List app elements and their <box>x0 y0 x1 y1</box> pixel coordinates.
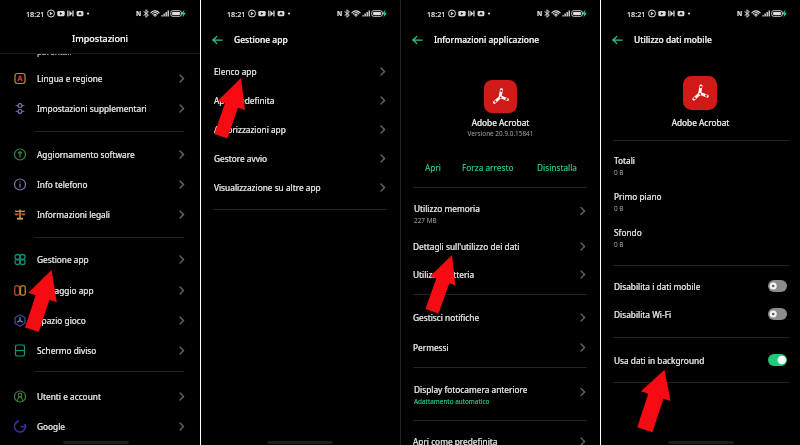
staticText: Lingua e regione <box>37 73 103 84</box>
button[interactable]: Lingua e regione <box>0 64 200 93</box>
staticText: 18:21 <box>627 9 646 19</box>
button[interactable]: Back <box>409 31 427 49</box>
button[interactable]: Disabilita i dati mobile <box>601 273 800 299</box>
staticText: Disabilita i dati mobile <box>614 281 701 292</box>
staticText: Primo piano <box>614 191 662 202</box>
staticText: 18:21 <box>26 9 45 19</box>
button[interactable]: Clonaggio app <box>0 276 200 305</box>
button[interactable]: Disinstalla <box>527 158 587 176</box>
staticText: Gestione app <box>37 254 89 265</box>
button[interactable]: Dettagli sull'utilizzo dei dati <box>401 232 600 261</box>
staticText: Google <box>37 421 66 432</box>
staticText: Info telefono <box>37 179 88 190</box>
staticText: Gestore avvio <box>214 153 268 164</box>
button[interactable]: Gestisci notifiche <box>401 303 600 332</box>
button[interactable]: Gestione app <box>0 245 200 274</box>
staticText: Utenti e account <box>37 391 101 402</box>
staticText: Gestisci notifiche <box>413 312 480 323</box>
staticText: Dettagli sull'utilizzo dei dati <box>413 241 520 252</box>
button[interactable]: Primo piano <box>601 187 800 217</box>
staticText: Clonaggio app <box>37 285 94 296</box>
button[interactable]: Display fotocamera anteriore <box>401 380 600 410</box>
button[interactable]: Toggle off <box>768 280 787 292</box>
staticText: Autorizzazioni app <box>214 124 286 135</box>
staticText: Apri come predefinita <box>413 436 498 445</box>
button[interactable]: Informazioni legali <box>0 200 200 229</box>
button[interactable]: Toggle off <box>768 308 787 320</box>
staticText: 0 B <box>614 240 624 249</box>
staticText: 227 MB <box>414 216 437 225</box>
button[interactable]: Utilizzo memoria <box>401 199 600 229</box>
staticText: Versione 20.9.0.15841 <box>401 129 600 138</box>
button[interactable]: Schermo diviso <box>0 336 200 365</box>
staticText: App predefinita <box>214 95 275 106</box>
staticText: Schermo diviso <box>37 345 97 356</box>
staticText: Elenco app <box>214 66 257 77</box>
staticText: N <box>337 9 343 18</box>
staticText: Display fotocamera anteriore <box>414 384 528 395</box>
button[interactable]: Impostazioni supplementari <box>0 94 200 123</box>
button[interactable]: Google <box>0 412 200 441</box>
staticText: Permessi <box>413 342 449 353</box>
button[interactable]: Toggle on <box>768 354 787 366</box>
staticText: Disabilita Wi-Fi <box>614 309 672 320</box>
button[interactable]: Back <box>609 31 627 49</box>
staticText: N <box>136 9 142 18</box>
button[interactable]: Info telefono <box>0 170 200 199</box>
button[interactable]: Usa dati in background <box>601 347 800 373</box>
staticText: Aggiornamento software <box>37 149 135 160</box>
button[interactable]: Aggiornamento software <box>0 140 200 169</box>
staticText: 0 B <box>614 204 624 213</box>
button[interactable]: Spazio gioco <box>0 306 200 335</box>
button[interactable]: Permessi <box>401 333 600 362</box>
staticText: Visualizzazione su altre app <box>214 182 321 193</box>
staticText: Adobe Acrobat <box>401 117 600 128</box>
staticText: parentali <box>37 46 72 57</box>
button[interactable]: App predefinita <box>201 86 400 115</box>
staticText: Gestione app <box>234 34 288 46</box>
staticText: 18:21 <box>427 9 446 19</box>
button[interactable]: Elenco app <box>201 57 400 86</box>
button[interactable]: Apri <box>403 158 463 176</box>
staticText: 0 B <box>614 168 624 177</box>
button[interactable]: Back <box>209 31 227 49</box>
button[interactable]: Utilizzo batteria <box>401 260 600 289</box>
button[interactable]: Sfondo <box>601 223 800 253</box>
staticText: Impostazioni <box>0 32 200 44</box>
button[interactable]: Autorizzazioni app <box>201 115 400 144</box>
button[interactable]: Gestore avvio <box>201 144 400 173</box>
staticText: Adattamento automatico <box>414 397 490 406</box>
staticText: Informazioni applicazione <box>434 34 540 46</box>
staticText: Utilizzo dati mobile <box>634 34 712 46</box>
button[interactable]: Totali <box>601 151 800 181</box>
staticText: Utilizzo batteria <box>413 269 475 280</box>
staticText: N <box>737 9 743 18</box>
button[interactable]: Apri come predefinita <box>401 427 600 445</box>
staticText: Utilizzo memoria <box>414 203 480 214</box>
staticText: Spazio gioco <box>37 315 86 326</box>
staticText: Sfondo <box>614 227 642 238</box>
staticText: Informazioni legali <box>37 209 110 220</box>
button[interactable]: Utenti e account <box>0 382 200 411</box>
button[interactable]: Disabilita Wi-Fi <box>601 301 800 327</box>
staticText: Usa dati in background <box>614 355 705 366</box>
staticText: Impostazioni supplementari <box>37 103 147 114</box>
staticText: Forza arresto <box>462 162 514 173</box>
staticText: Apri <box>425 162 441 173</box>
button[interactable]: Visualizzazione su altre app <box>201 173 400 202</box>
staticText: N <box>537 9 543 18</box>
staticText: 18:21 <box>227 9 246 19</box>
staticText: Totali <box>614 155 635 166</box>
staticText: Adobe Acrobat <box>601 117 800 128</box>
staticText: Disinstalla <box>537 162 577 173</box>
button[interactable]: Forza arresto <box>458 158 518 176</box>
